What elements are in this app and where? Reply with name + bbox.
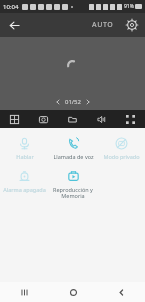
staticText: 91% xyxy=(124,3,134,10)
button[interactable]: Llamada de voz xyxy=(49,135,97,162)
button[interactable]: Volume xyxy=(87,110,116,128)
button[interactable]: Reproducción y Memoria xyxy=(49,168,97,202)
button[interactable]: Grid view xyxy=(0,110,29,128)
button[interactable]: AUTO xyxy=(89,18,117,32)
button[interactable]: Previous xyxy=(54,98,62,106)
staticText: 10:04 xyxy=(3,3,19,11)
staticText: Alarma apagada xyxy=(3,186,46,193)
button[interactable]: Camera xyxy=(29,110,58,128)
button[interactable]: Home xyxy=(49,282,97,302)
staticText: Modo privado xyxy=(103,153,140,160)
button[interactable]: Next xyxy=(84,98,92,106)
button[interactable]: Recents xyxy=(0,282,49,302)
button[interactable]: Back xyxy=(4,15,24,35)
button[interactable]: Settings xyxy=(123,16,141,34)
button[interactable]: Hablar xyxy=(0,135,49,162)
staticText: Llamada de voz xyxy=(53,153,94,160)
staticText: AUTO xyxy=(92,20,114,30)
staticText: Reproducción y Memoria xyxy=(53,186,93,200)
button[interactable]: Alarma apagada xyxy=(0,168,49,195)
button[interactable]: Folder xyxy=(58,110,87,128)
staticText: 01/52 xyxy=(65,98,81,106)
staticText: Hablar xyxy=(16,153,34,160)
button[interactable]: Fullscreen xyxy=(116,110,145,128)
button[interactable]: Modo privado xyxy=(97,135,145,162)
button[interactable]: Back xyxy=(97,282,145,302)
